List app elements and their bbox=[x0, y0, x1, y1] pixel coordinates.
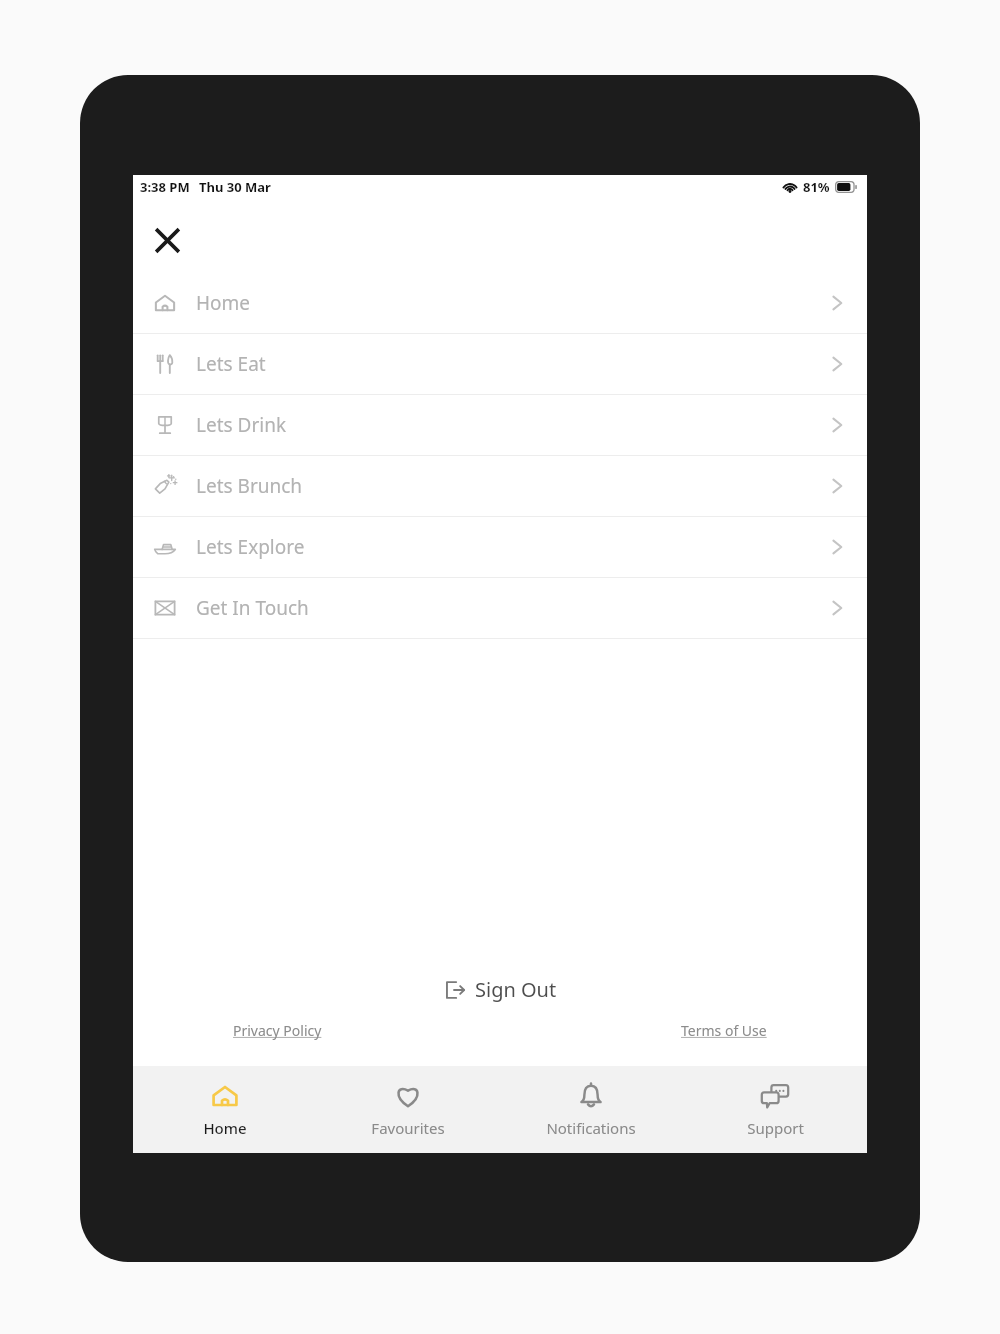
staticText: Lets Explore bbox=[196, 534, 305, 560]
button[interactable]: Privacy Policy bbox=[229, 1017, 326, 1044]
button[interactable]: Lets Drink bbox=[133, 395, 867, 456]
staticText: Support bbox=[747, 1118, 804, 1138]
staticText: Notifications bbox=[546, 1118, 636, 1138]
staticText: Lets Brunch bbox=[196, 473, 303, 499]
staticText: 3:38 PM bbox=[140, 178, 190, 196]
staticText: Get In Touch bbox=[196, 595, 309, 621]
button[interactable]: Home bbox=[133, 1073, 316, 1146]
staticText: Thu 30 Mar bbox=[199, 178, 271, 196]
button[interactable]: Lets Brunch bbox=[133, 456, 867, 517]
staticText: Sign Out bbox=[475, 976, 557, 1003]
button[interactable]: Terms of Use bbox=[677, 1017, 771, 1044]
button[interactable]: Get In Touch bbox=[133, 578, 867, 639]
staticText: Terms of Use bbox=[681, 1021, 767, 1040]
staticText: Home bbox=[203, 1118, 247, 1138]
staticText: Lets Drink bbox=[196, 412, 287, 438]
button[interactable]: Lets Explore bbox=[133, 517, 867, 578]
staticText: Lets Eat bbox=[196, 351, 266, 377]
button[interactable]: Lets Eat bbox=[133, 334, 867, 395]
staticText: Home bbox=[196, 290, 251, 316]
button[interactable]: Favourites bbox=[316, 1073, 499, 1146]
button[interactable]: Home bbox=[133, 273, 867, 334]
button[interactable]: Support bbox=[683, 1073, 867, 1146]
staticText: Favourites bbox=[371, 1118, 445, 1138]
staticText: 81% bbox=[803, 178, 830, 196]
button[interactable]: Close bbox=[143, 216, 191, 264]
button[interactable]: Sign Out bbox=[429, 970, 571, 1009]
staticText: Privacy Policy bbox=[233, 1021, 322, 1040]
button[interactable]: Notifications bbox=[499, 1073, 683, 1146]
